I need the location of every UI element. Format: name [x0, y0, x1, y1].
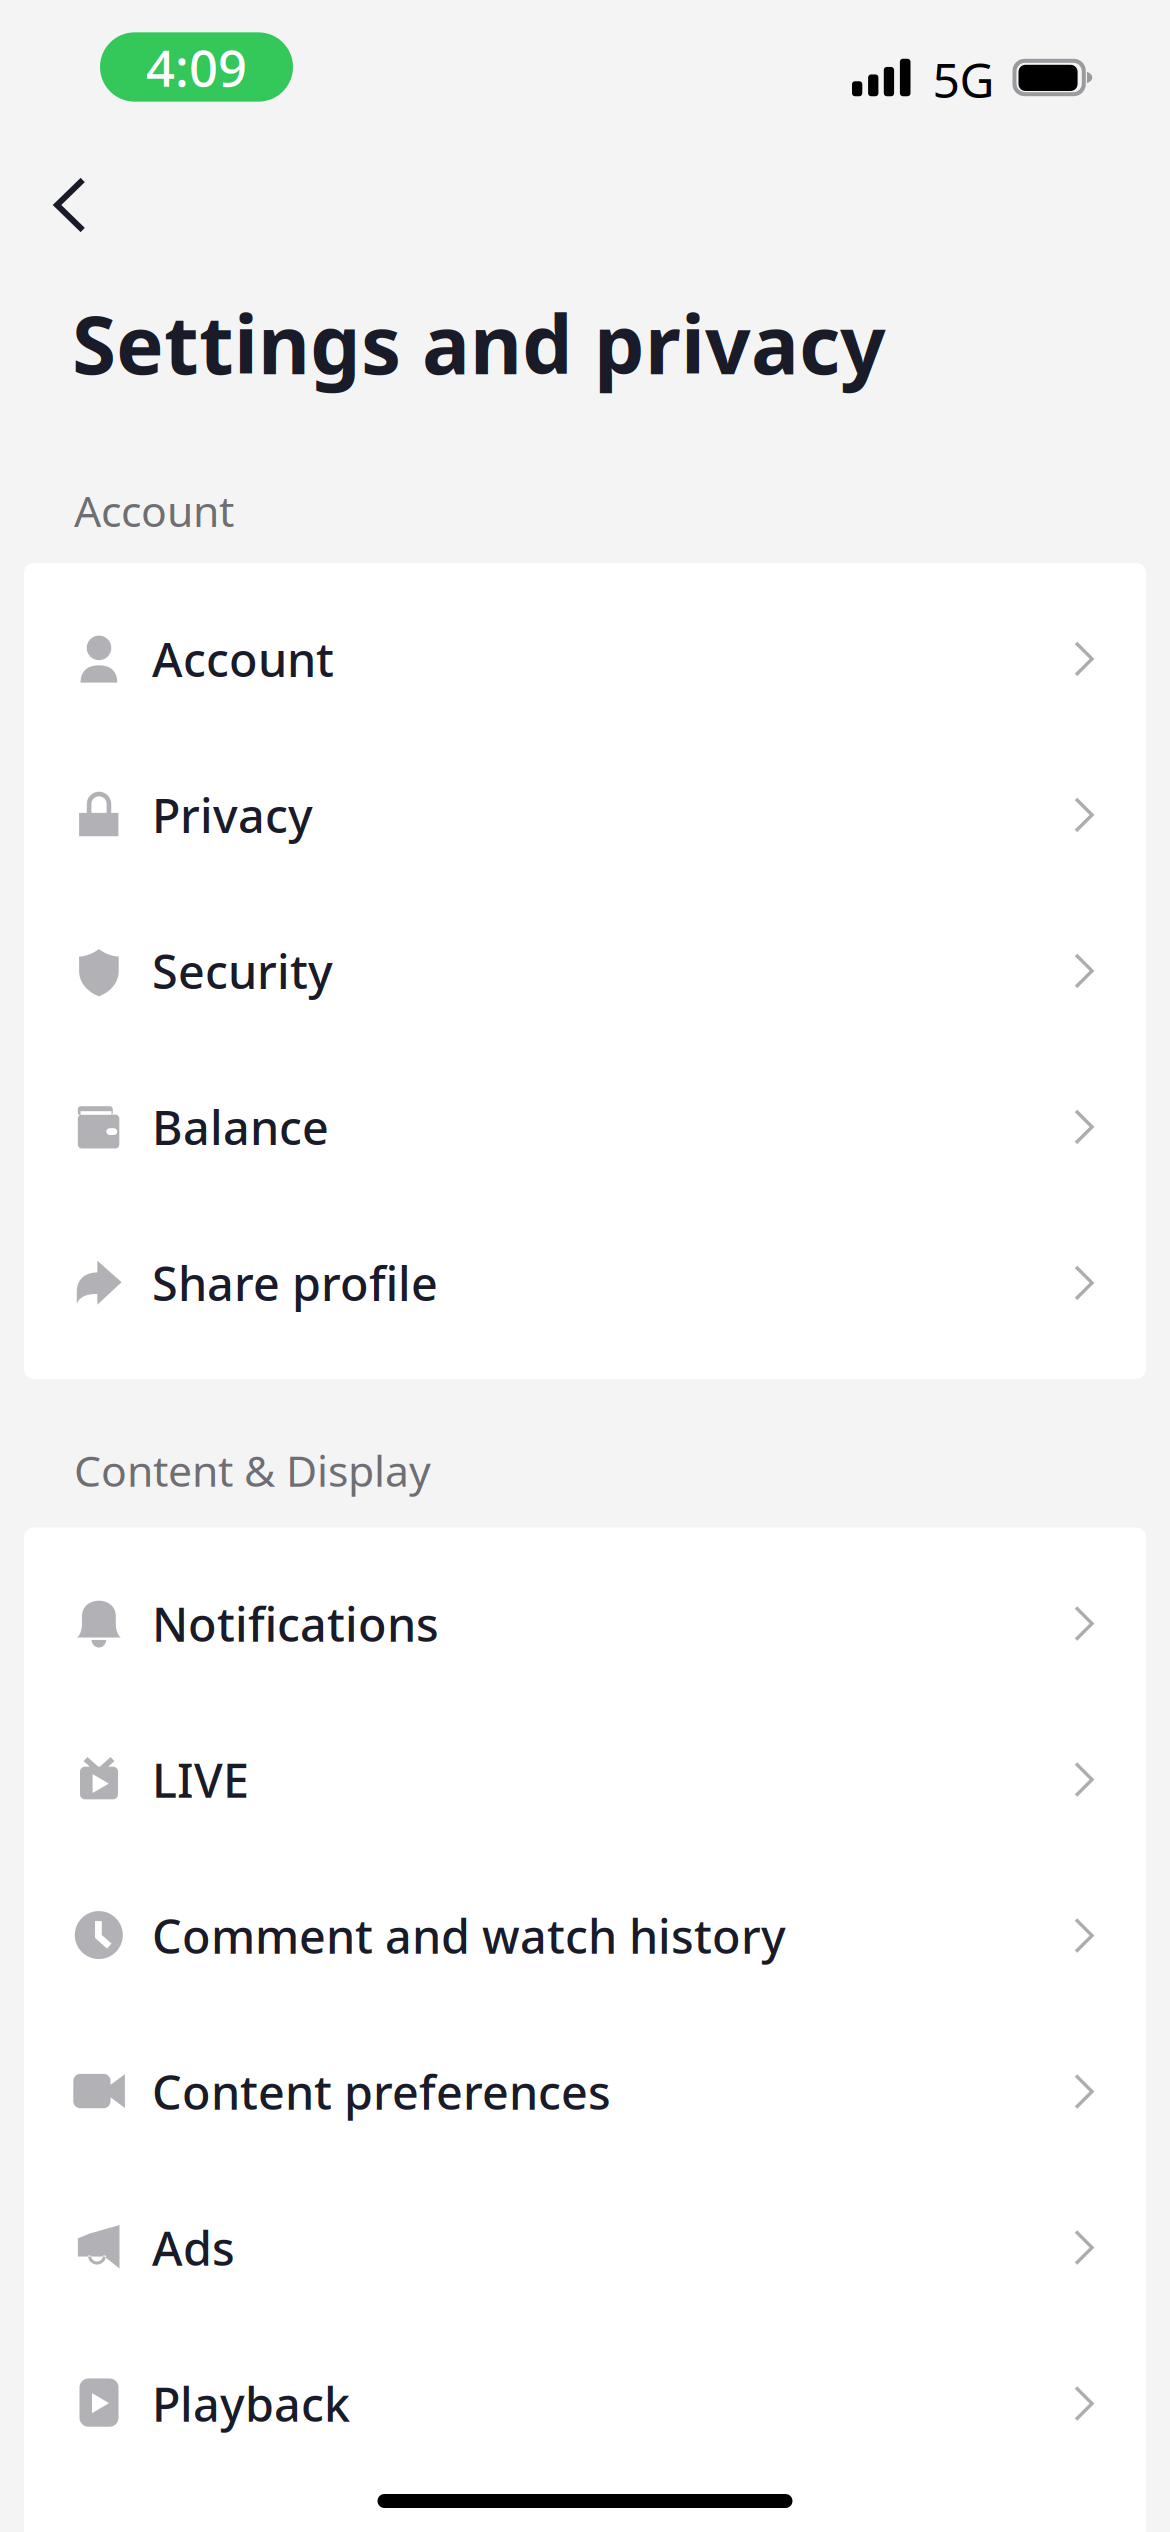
staticText: 5G — [932, 48, 994, 111]
button[interactable]: Ads — [24, 2170, 1146, 2326]
staticText: Content & Display — [74, 1442, 431, 1499]
button[interactable]: Notifications — [24, 1546, 1146, 1702]
button[interactable]: LIVE — [24, 1702, 1146, 1858]
staticText: Privacy — [152, 784, 313, 846]
staticText: Notifications — [152, 1593, 439, 1655]
button[interactable]: Balance — [24, 1049, 1146, 1205]
staticText: Balance — [152, 1096, 329, 1158]
button[interactable]: Content preferences — [24, 2014, 1146, 2170]
staticText: 4:09 — [146, 33, 247, 101]
button[interactable]: Privacy — [24, 737, 1146, 893]
staticText: Account — [74, 482, 234, 539]
staticText: LIVE — [152, 1749, 249, 1811]
staticText: Account — [152, 628, 334, 690]
staticText: Playback — [152, 2373, 350, 2435]
staticText: Comment and watch history — [152, 1905, 786, 1967]
button[interactable]: Comment and watch history — [24, 1858, 1146, 2014]
staticText: Share profile — [152, 1252, 438, 1314]
button[interactable]: Playback — [24, 2326, 1146, 2482]
staticText: Security — [152, 940, 333, 1002]
button[interactable]: Security — [24, 893, 1146, 1049]
staticText: Settings and privacy — [72, 290, 886, 396]
button[interactable]: Account — [24, 581, 1146, 737]
staticText: Ads — [152, 2217, 235, 2279]
staticText: Content preferences — [152, 2061, 611, 2123]
button[interactable]: Back — [0, 134, 126, 290]
button[interactable]: Share profile — [24, 1205, 1146, 1361]
